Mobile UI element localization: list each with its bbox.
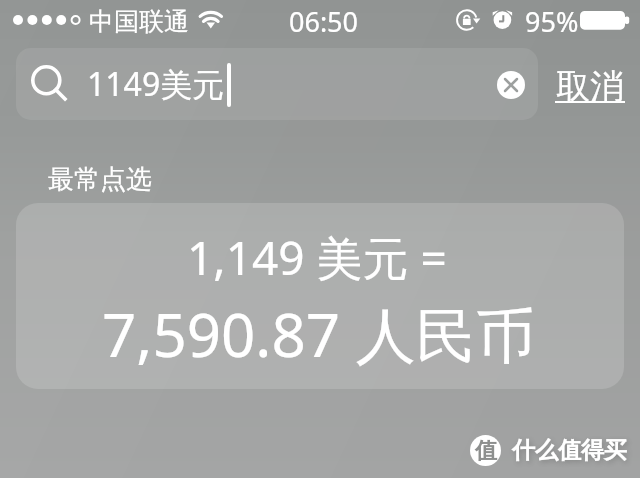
staticText: 95% [525,3,579,40]
staticText: 值 [475,437,497,465]
staticText: 7,590.87 人民币 [102,293,536,375]
button[interactable]: 1,149 美元 = [16,203,624,389]
staticText: 取消 [556,65,624,108]
button[interactable]: 1149美元 [16,48,538,120]
staticText: 最常点选 [48,163,152,196]
staticText: 06:50 [289,3,359,40]
staticText: 什么值得买 [512,436,627,465]
button[interactable]: Clear search text [497,71,525,99]
staticText: 中国联通 [89,6,189,37]
staticText: 1,149 美元 = [187,226,447,289]
staticText: 1149美元 [87,62,225,106]
button[interactable]: 取消 [554,60,626,108]
